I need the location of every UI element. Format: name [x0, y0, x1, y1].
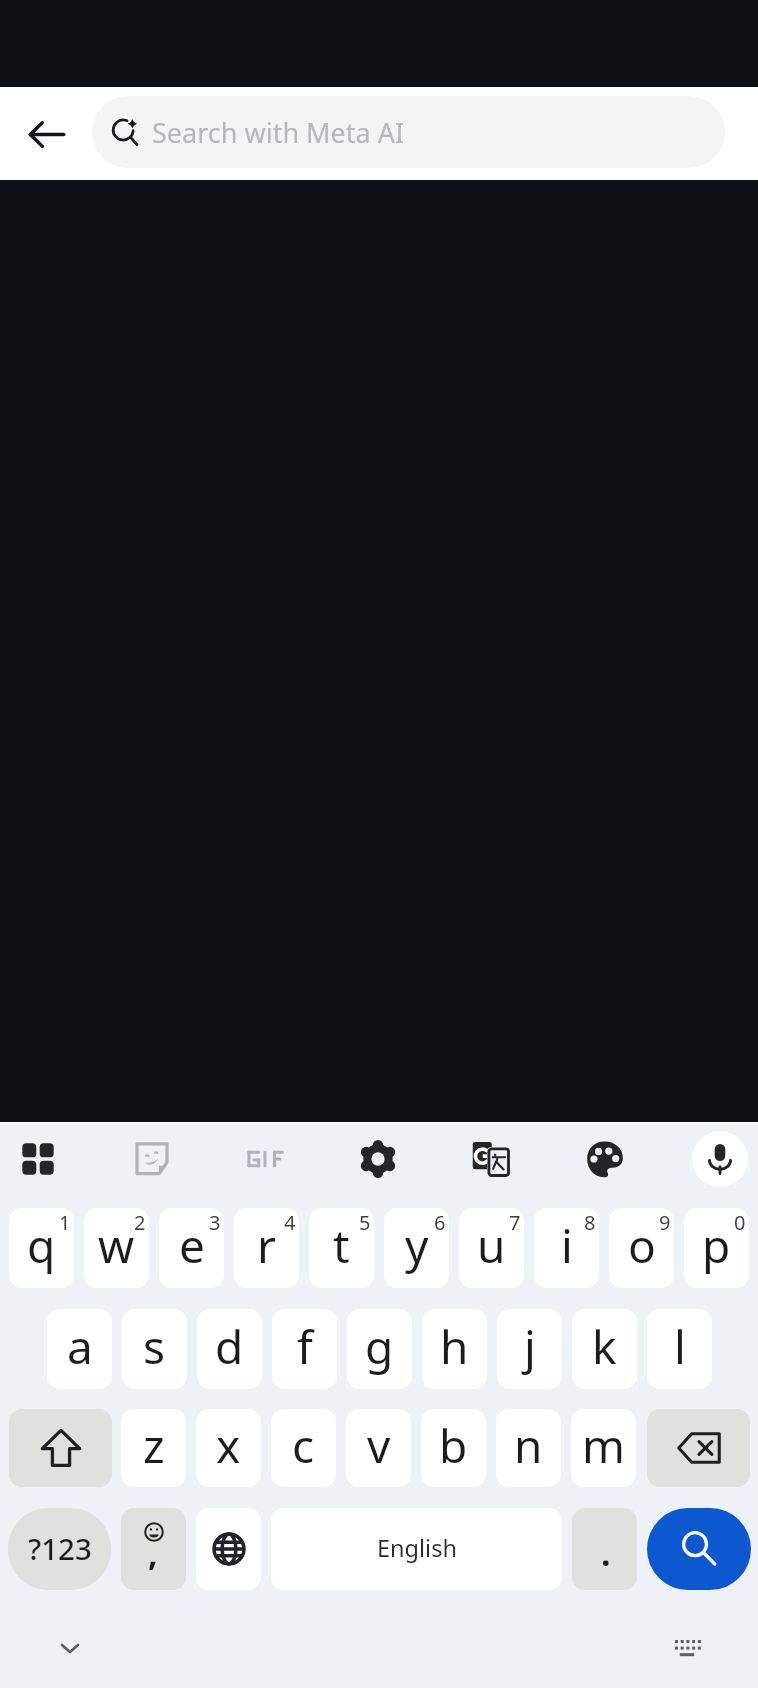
button[interactable]: r: [234, 1208, 299, 1288]
button[interactable]: j: [497, 1309, 562, 1389]
button[interactable]: Hide keyboard: [46, 1624, 94, 1672]
staticText: j: [524, 1315, 536, 1378]
staticText: 9: [659, 1209, 671, 1236]
button[interactable]: m: [571, 1409, 636, 1487]
staticText: r: [257, 1214, 276, 1277]
staticText: z: [143, 1414, 165, 1477]
button[interactable]: q: [9, 1208, 74, 1288]
button[interactable]: d: [197, 1309, 262, 1389]
button[interactable]: ?123: [8, 1508, 111, 1590]
staticText: u: [477, 1214, 506, 1277]
button[interactable]: h: [422, 1309, 487, 1389]
staticText: s: [143, 1315, 166, 1378]
button[interactable]: Voice input: [692, 1131, 748, 1187]
staticText: 3: [209, 1209, 221, 1236]
staticText: v: [367, 1414, 391, 1477]
staticText: d: [215, 1315, 244, 1378]
staticText: e: [179, 1214, 205, 1277]
button[interactable]: Translate: [463, 1131, 519, 1187]
staticText: 1: [59, 1209, 71, 1236]
button[interactable]: t: [309, 1208, 374, 1288]
staticText: 2: [134, 1209, 146, 1236]
button[interactable]: Search: [647, 1508, 751, 1590]
staticText: 5: [359, 1209, 371, 1236]
button[interactable]: y: [384, 1208, 449, 1288]
button[interactable]: Shift: [9, 1409, 112, 1487]
staticText: l: [674, 1315, 686, 1378]
staticText: 6: [434, 1209, 446, 1236]
button[interactable]: .: [572, 1508, 637, 1590]
staticText: a: [67, 1315, 93, 1378]
staticText: .: [601, 1530, 611, 1576]
button[interactable]: g: [347, 1309, 412, 1389]
button[interactable]: English: [271, 1508, 562, 1590]
button[interactable]: Keyboard layout: [663, 1622, 711, 1670]
button[interactable]: i: [534, 1208, 599, 1288]
button[interactable]: Settings: [350, 1131, 406, 1187]
button[interactable]: Search with Meta AI: [92, 96, 725, 168]
staticText: 7: [509, 1209, 521, 1236]
button[interactable]: a: [47, 1309, 112, 1389]
button[interactable]: b: [421, 1409, 486, 1487]
button[interactable]: v: [346, 1409, 411, 1487]
button[interactable]: e: [159, 1208, 224, 1288]
staticText: i: [561, 1214, 573, 1277]
button[interactable]: z: [121, 1409, 186, 1487]
button[interactable]: p: [684, 1208, 749, 1288]
button[interactable]: Back: [10, 98, 82, 170]
button[interactable]: n: [496, 1409, 561, 1487]
staticText: Search with Meta AI: [152, 114, 405, 151]
staticText: English: [377, 1532, 457, 1564]
staticText: b: [439, 1414, 468, 1477]
button[interactable]: Themes: [577, 1131, 633, 1187]
staticText: y: [405, 1214, 429, 1277]
button[interactable]: c: [271, 1409, 336, 1487]
staticText: ,: [148, 1530, 158, 1576]
button[interactable]: Backspace: [647, 1409, 750, 1487]
staticText: h: [440, 1315, 469, 1378]
button[interactable]: k: [572, 1309, 637, 1389]
button[interactable]: s: [122, 1309, 187, 1389]
staticText: g: [365, 1315, 394, 1378]
button[interactable]: Change language: [196, 1508, 261, 1590]
button[interactable]: o: [609, 1208, 674, 1288]
button[interactable]: l: [647, 1309, 712, 1389]
button[interactable]: w: [84, 1208, 149, 1288]
staticText: q: [27, 1214, 56, 1277]
staticText: c: [292, 1414, 315, 1477]
staticText: m: [582, 1414, 626, 1477]
button[interactable]: GIF: [237, 1131, 293, 1187]
staticText: t: [333, 1214, 350, 1277]
staticText: p: [702, 1214, 731, 1277]
button[interactable]: Stickers: [124, 1131, 180, 1187]
staticText: ?123: [28, 1528, 92, 1568]
staticText: n: [514, 1414, 543, 1477]
staticText: 8: [584, 1209, 596, 1236]
staticText: f: [297, 1315, 313, 1378]
staticText: x: [216, 1414, 241, 1477]
button[interactable]: f: [272, 1309, 337, 1389]
button[interactable]: u: [459, 1208, 524, 1288]
staticText: w: [98, 1214, 135, 1277]
button[interactable]: Apps: [10, 1131, 66, 1187]
button[interactable]: x: [196, 1409, 261, 1487]
staticText: k: [592, 1315, 617, 1378]
staticText: 0: [734, 1209, 746, 1236]
staticText: 4: [284, 1209, 296, 1236]
staticText: o: [628, 1214, 656, 1277]
button[interactable]: Emoji and comma: [121, 1508, 186, 1590]
